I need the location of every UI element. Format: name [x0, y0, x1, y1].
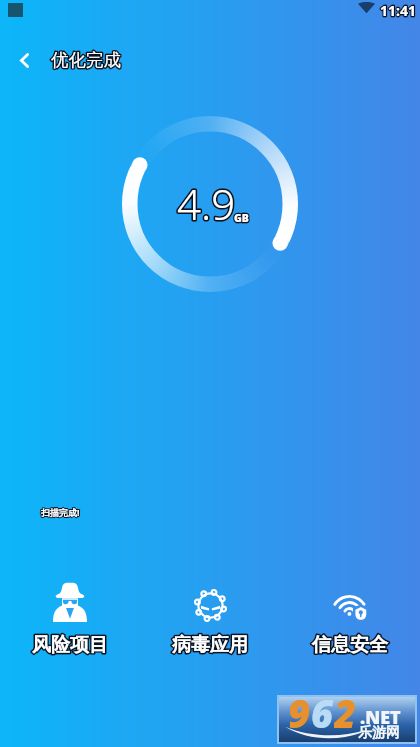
staticText: 6 [311, 687, 334, 732]
staticText: 优化完成 [51, 49, 121, 71]
staticText: .NET [360, 705, 401, 730]
staticText: 扫描完成! [41, 506, 80, 518]
staticText: 风险项目 [32, 633, 108, 657]
staticText: 2 [334, 687, 357, 732]
staticText: GB [234, 211, 249, 225]
staticText: 病毒应用 [172, 633, 248, 657]
staticText: 信息安全 [312, 633, 388, 657]
staticText: 11:41 [380, 1, 416, 20]
button[interactable]: Back [0, 36, 48, 84]
button[interactable]: 风险项目 [0, 581, 140, 657]
staticText: 4.9 [177, 175, 236, 232]
staticText: 优化完成 [51, 49, 121, 71]
staticText: 11:41 [380, 1, 416, 20]
staticText: 风险项目 [32, 633, 108, 657]
staticText: GB [234, 211, 249, 225]
staticText: 扫描完成! [41, 506, 80, 518]
staticText: 乐游网 [358, 724, 400, 742]
button[interactable]: 信息安全 [280, 581, 420, 657]
staticText: 病毒应用 [172, 633, 248, 657]
staticText: 4.9 [177, 175, 236, 232]
button[interactable]: 病毒应用 [140, 581, 280, 657]
staticText: 9 [288, 687, 311, 732]
staticText: 信息安全 [312, 633, 388, 657]
